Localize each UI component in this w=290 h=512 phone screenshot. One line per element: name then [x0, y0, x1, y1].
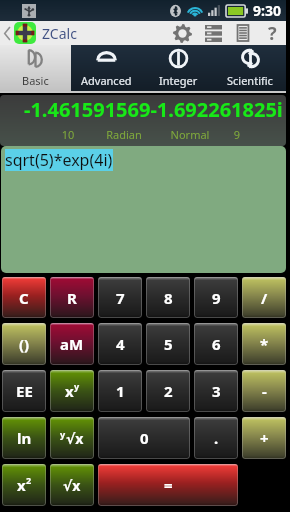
button[interactable]: = [98, 464, 238, 506]
button[interactable]: Advanced [71, 45, 142, 91]
staticText: + [260, 428, 269, 448]
button[interactable]: x [2, 464, 46, 506]
button[interactable]: History [198, 21, 228, 45]
staticText: 2 [26, 474, 32, 486]
staticText: C [19, 288, 29, 308]
button[interactable]: Scientific [214, 45, 286, 91]
staticText: () [19, 334, 30, 354]
staticText: ln [17, 428, 32, 448]
staticText: x [17, 475, 26, 495]
staticText: - [262, 381, 267, 401]
staticText: 9 [217, 127, 257, 142]
button[interactable]: () [2, 323, 46, 365]
staticText: 9:30 [253, 1, 281, 20]
button[interactable]: + [242, 417, 286, 459]
staticText: Integer [159, 73, 198, 88]
staticText: 7 [116, 288, 125, 308]
button[interactable]: C [2, 277, 46, 318]
button[interactable]: 7 [98, 277, 142, 318]
button[interactable]: 2 [146, 370, 190, 412]
staticText: √x [66, 429, 84, 448]
button[interactable]: x [50, 370, 94, 412]
staticText: aM [60, 334, 84, 354]
button[interactable]: 9 [194, 277, 238, 318]
button[interactable]: Basic [0, 45, 71, 91]
staticText: Advanced [81, 73, 132, 88]
staticText: 2 [164, 381, 173, 401]
button[interactable]: . [194, 417, 238, 459]
button[interactable]: sqrt(5)*exp(4i) [1, 146, 286, 273]
staticText: 3 [212, 381, 221, 401]
staticText: y [60, 428, 66, 440]
staticText: sqrt(5)*exp(4i) [5, 149, 113, 171]
staticText: R [67, 288, 77, 308]
staticText: 0 [140, 428, 149, 448]
staticText: / [261, 288, 268, 308]
staticText: Basic [22, 73, 49, 88]
button[interactable]: Integer [142, 45, 214, 91]
button[interactable]: 0 [98, 417, 190, 459]
button[interactable]: ln [2, 417, 46, 459]
button[interactable]: EE [2, 370, 46, 412]
button[interactable]: 1 [98, 370, 142, 412]
button[interactable]: y [50, 417, 94, 459]
staticText: Normal [170, 127, 210, 142]
button[interactable]: R [50, 277, 94, 318]
staticText: . [214, 428, 219, 448]
button[interactable]: aM [50, 323, 94, 365]
button[interactable]: / [242, 277, 286, 318]
button[interactable]: - [242, 370, 286, 412]
staticText: 9 [212, 288, 221, 308]
staticText: 5 [164, 334, 173, 354]
staticText: 6 [212, 334, 221, 354]
staticText: 4 [116, 334, 125, 354]
staticText: * [260, 334, 269, 354]
button[interactable]: Notes [228, 21, 258, 45]
staticText: 10 [48, 127, 88, 142]
button[interactable]: Up [4, 21, 77, 45]
button[interactable]: Help [258, 21, 286, 45]
button[interactable]: * [242, 323, 286, 365]
button[interactable]: 6 [194, 323, 238, 365]
button[interactable]: -1.461591569-1.692261825i [0, 95, 286, 146]
staticText: √x [63, 476, 81, 495]
staticText: ZCalc [42, 24, 77, 43]
staticText: EE [16, 381, 33, 401]
button[interactable]: 4 [98, 323, 142, 365]
staticText: y [74, 380, 80, 392]
staticText: -1.461591569-1.692261825i [24, 96, 283, 123]
button[interactable]: Settings [166, 21, 198, 45]
button[interactable]: √x [50, 464, 94, 506]
button[interactable]: 8 [146, 277, 190, 318]
staticText: Radian [104, 127, 144, 142]
button[interactable]: 3 [194, 370, 238, 412]
staticText: 8 [164, 288, 173, 308]
staticText: = [164, 475, 173, 495]
staticText: 1 [116, 381, 125, 401]
staticText: ? [268, 21, 277, 45]
staticText: Scientific [227, 73, 273, 88]
staticText: x [65, 381, 74, 401]
button[interactable]: 5 [146, 323, 190, 365]
